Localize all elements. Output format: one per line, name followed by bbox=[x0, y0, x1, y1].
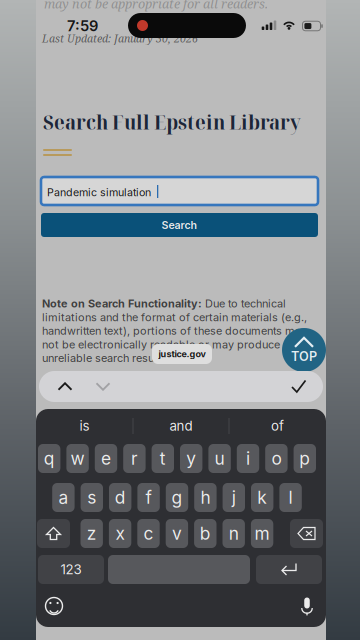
button[interactable]: m bbox=[251, 519, 273, 548]
staticText: v bbox=[172, 523, 182, 544]
staticText: not be electronically readable or may pr… bbox=[42, 338, 280, 351]
staticText: Pandemic simulation bbox=[47, 186, 151, 199]
staticText: e bbox=[101, 448, 111, 469]
button[interactable]: u bbox=[208, 444, 231, 473]
button[interactable]: Previous field bbox=[50, 371, 80, 402]
staticText: n bbox=[229, 523, 239, 544]
button[interactable]: h bbox=[194, 483, 217, 512]
staticText: g bbox=[171, 487, 182, 508]
staticText: p bbox=[299, 448, 310, 469]
button[interactable]: y bbox=[180, 444, 202, 473]
button[interactable]: r bbox=[123, 444, 146, 473]
staticText: limitations and the format of certain ma… bbox=[42, 311, 307, 324]
staticText: unreliable search results. bbox=[42, 351, 169, 365]
staticText: a bbox=[58, 487, 68, 508]
button[interactable]: Done bbox=[284, 371, 314, 402]
staticText: u bbox=[215, 448, 225, 469]
button[interactable]: l bbox=[279, 483, 302, 512]
button[interactable]: Shift bbox=[37, 519, 70, 548]
staticText: and bbox=[169, 418, 192, 434]
staticText: Note on Search Functionality: Due to tec… bbox=[42, 297, 286, 310]
staticText: Search bbox=[161, 218, 197, 231]
staticText: TOP bbox=[291, 349, 317, 364]
staticText: j bbox=[232, 487, 236, 508]
button[interactable]: f bbox=[137, 483, 160, 512]
button[interactable]: o bbox=[265, 444, 288, 473]
button[interactable]: s bbox=[81, 483, 103, 512]
staticText: s bbox=[87, 487, 96, 508]
button[interactable]: of bbox=[229, 411, 325, 441]
staticText: Last Updated: January 30, 2026 bbox=[42, 31, 198, 45]
button[interactable]: Return bbox=[256, 555, 322, 584]
button[interactable]: b bbox=[194, 519, 216, 548]
button[interactable]: k bbox=[251, 483, 273, 512]
staticText: 7:59 bbox=[67, 17, 98, 35]
button[interactable]: c bbox=[137, 519, 160, 548]
button[interactable]: z bbox=[80, 519, 103, 548]
staticText: r bbox=[131, 448, 138, 469]
staticText: b bbox=[200, 523, 211, 544]
button[interactable]: w bbox=[66, 444, 89, 473]
button[interactable]: a bbox=[52, 483, 75, 512]
button[interactable]: and bbox=[133, 411, 228, 441]
button[interactable]: Next field bbox=[88, 371, 118, 402]
staticText: o bbox=[271, 448, 281, 469]
button[interactable]: 123 bbox=[38, 555, 104, 584]
staticText: y bbox=[186, 448, 196, 469]
button[interactable]: p bbox=[294, 444, 316, 473]
button[interactable]: Delete bbox=[290, 519, 323, 548]
button[interactable]: j bbox=[223, 483, 245, 512]
button[interactable]: Scroll to top bbox=[282, 328, 326, 372]
staticText: i bbox=[246, 448, 250, 469]
staticText: is bbox=[79, 418, 89, 434]
button[interactable]: e bbox=[95, 444, 117, 473]
staticText: 123 bbox=[60, 561, 81, 577]
button[interactable]: q bbox=[38, 444, 60, 473]
button[interactable]: d bbox=[109, 483, 131, 512]
button[interactable]: is bbox=[36, 411, 132, 441]
button[interactable]: Dictation bbox=[294, 593, 320, 619]
staticText: d bbox=[115, 487, 126, 508]
staticText: w bbox=[71, 448, 85, 469]
staticText: t bbox=[160, 448, 166, 469]
staticText: l bbox=[289, 487, 293, 508]
staticText: f bbox=[146, 487, 152, 508]
button[interactable]: v bbox=[166, 519, 188, 548]
staticText: handwritten text), portions of these doc… bbox=[42, 324, 307, 337]
staticText: m bbox=[255, 523, 270, 544]
staticText: may not be appropriate for all readers. bbox=[44, 0, 268, 12]
button[interactable]: Pandemic simulation bbox=[41, 177, 318, 205]
button[interactable]: i bbox=[237, 444, 259, 473]
staticText: justice.gov bbox=[158, 348, 205, 359]
button[interactable]: g bbox=[166, 483, 188, 512]
button[interactable]: t bbox=[152, 444, 174, 473]
staticText: z bbox=[87, 523, 97, 544]
staticText: x bbox=[116, 523, 125, 544]
button[interactable]: n bbox=[222, 519, 245, 548]
staticText: of bbox=[271, 418, 284, 434]
staticText: h bbox=[200, 487, 210, 508]
staticText: Search Full Epstein Library bbox=[43, 108, 301, 135]
staticText: q bbox=[44, 448, 55, 469]
button[interactable]: x bbox=[109, 519, 131, 548]
staticText: k bbox=[257, 487, 267, 508]
button[interactable]: Emoji bbox=[41, 593, 67, 619]
staticText: c bbox=[143, 523, 153, 544]
button[interactable]: Search bbox=[41, 213, 318, 237]
